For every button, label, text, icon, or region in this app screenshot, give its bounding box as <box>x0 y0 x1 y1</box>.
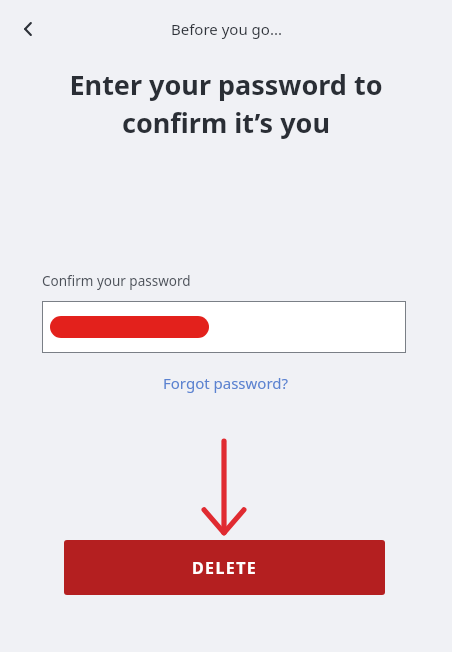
staticText: Confirm your password <box>42 272 191 290</box>
staticText: Before you go... <box>171 19 282 39</box>
button[interactable]: DELETE <box>64 540 385 595</box>
staticText: Enter your password to confirm it’s you <box>34 66 418 141</box>
button[interactable]: Back <box>8 9 48 49</box>
button[interactable]: Forgot password? <box>157 371 295 395</box>
staticText: Forgot password? <box>163 373 289 393</box>
button[interactable] <box>42 301 406 353</box>
staticText: DELETE <box>192 557 258 579</box>
